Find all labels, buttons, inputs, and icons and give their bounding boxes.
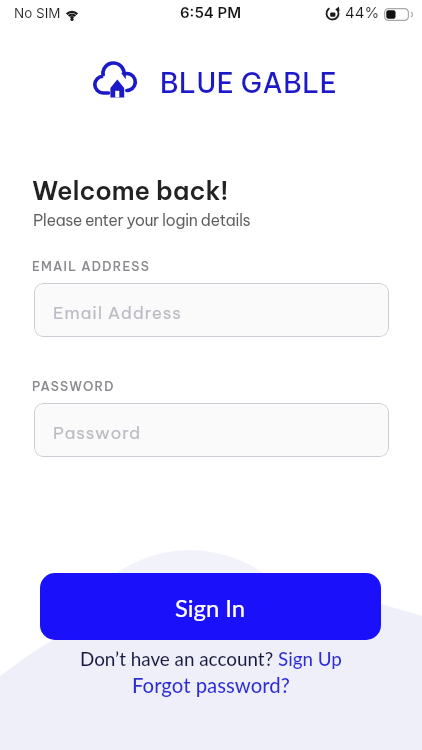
staticText: 44% [345,3,380,21]
staticText: Password [53,422,142,444]
button[interactable]: Sign Up [278,647,342,670]
staticText: Welcome back! [32,174,229,206]
staticText: Please enter your login details [33,210,251,230]
button[interactable]: Email Address [34,283,389,337]
button[interactable]: Forgot password? [132,673,290,697]
staticText: EMAIL ADDRESS [32,258,150,274]
button[interactable]: Password [34,403,389,457]
staticText: Sign In [175,594,246,623]
staticText: 6:54 PM [180,3,242,21]
staticText: BLUE GABLE [160,66,338,100]
staticText: Don’t have an account? [80,647,278,670]
staticText: PASSWORD [32,378,115,394]
staticText: No SIM [14,5,61,21]
staticText: Email Address [53,302,182,324]
button[interactable]: Sign In [40,573,381,640]
